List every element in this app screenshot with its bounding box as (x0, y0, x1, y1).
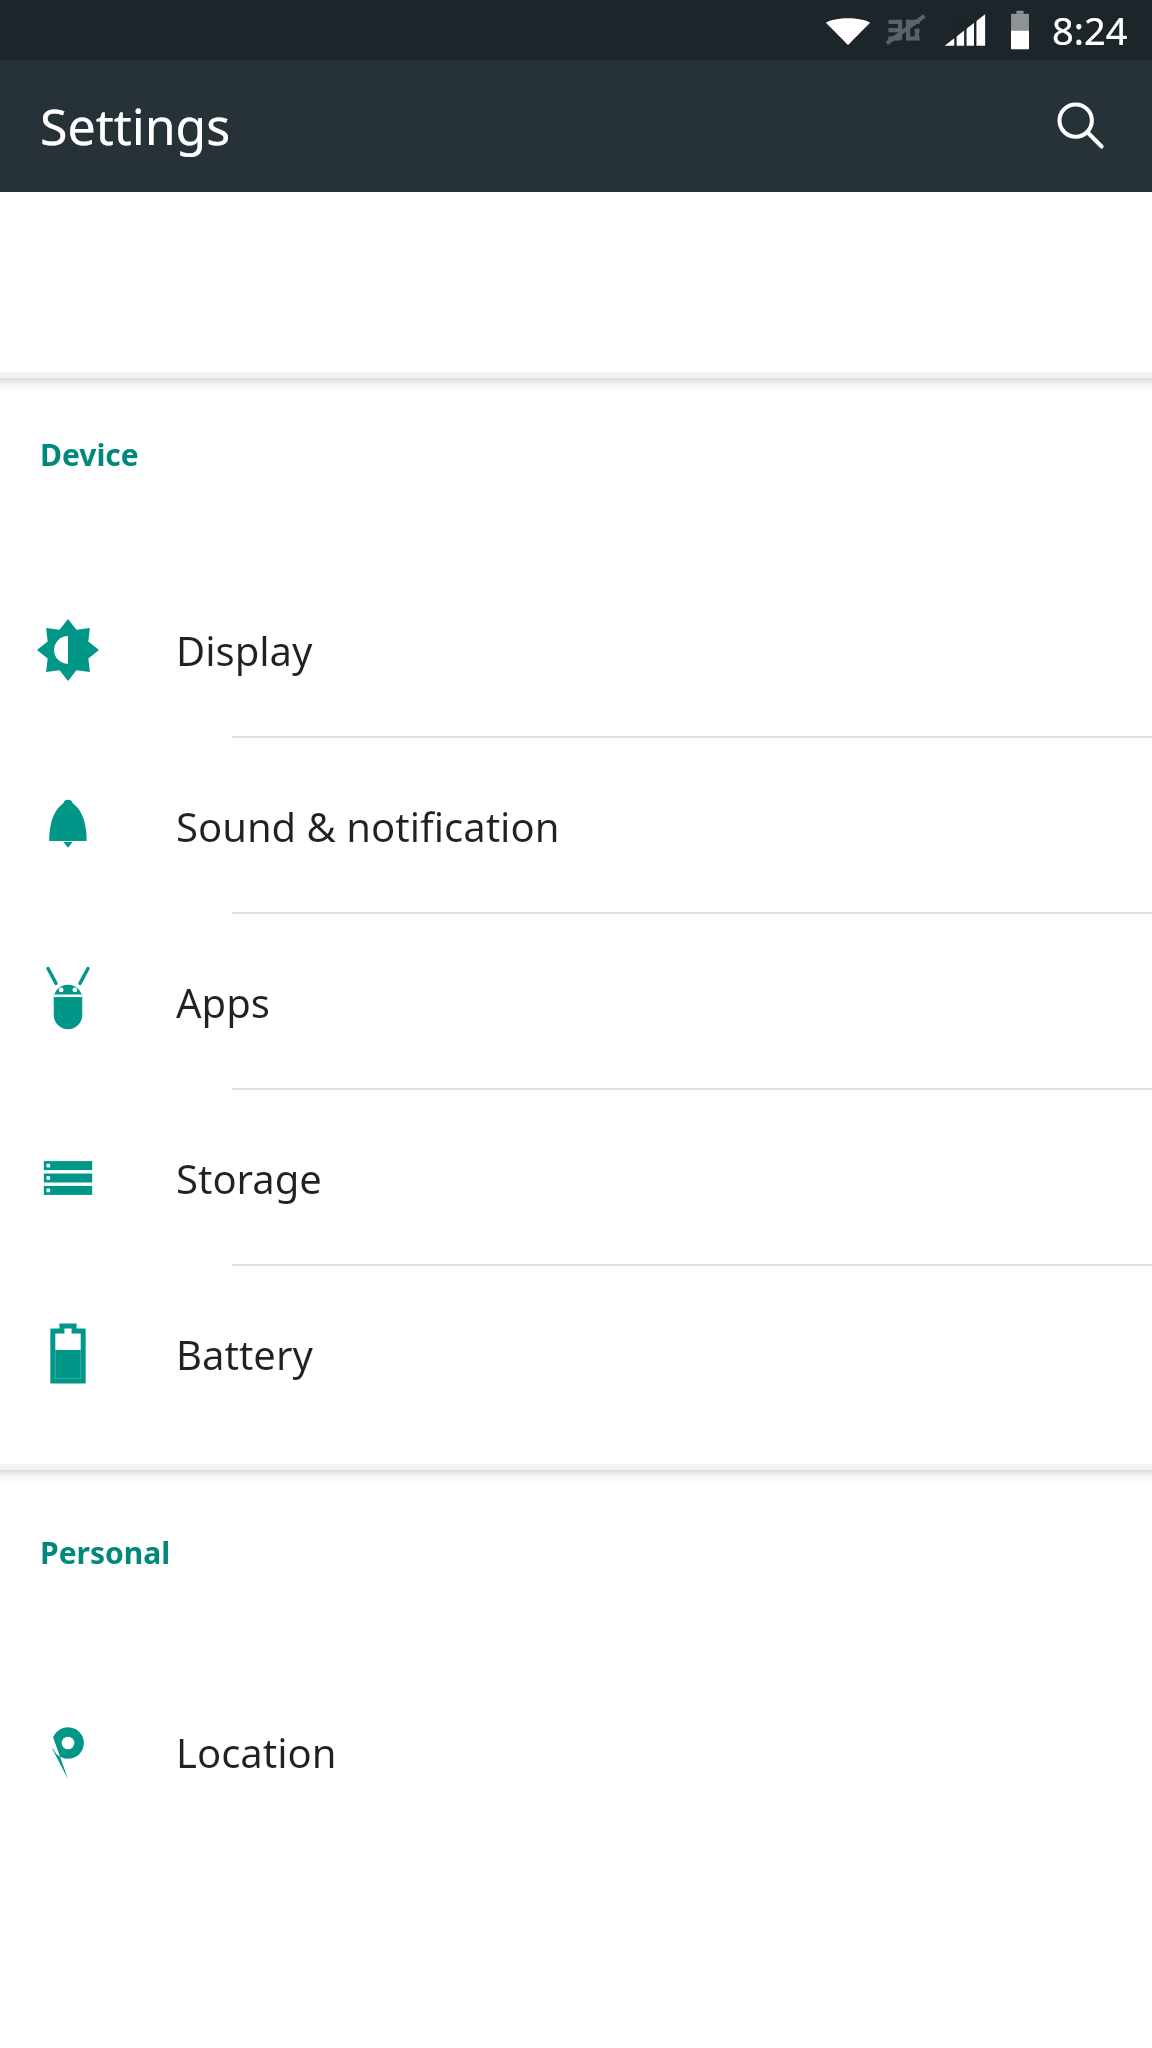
staticText: Sound & notification (176, 799, 560, 853)
button[interactable]: Location (0, 1664, 1152, 1840)
button[interactable]: Apps (0, 914, 1152, 1090)
staticText: Apps (176, 975, 270, 1029)
staticText: Settings (40, 92, 231, 160)
staticText: Location (176, 1725, 337, 1779)
button[interactable]: Sound & notification (0, 738, 1152, 914)
button[interactable]: Search (1030, 76, 1130, 176)
button[interactable]: Battery (0, 1266, 1152, 1442)
staticText: Device (40, 434, 139, 475)
staticText: Battery (176, 1327, 313, 1381)
staticText: Storage (176, 1151, 322, 1205)
staticText: Personal (40, 1532, 171, 1573)
button[interactable]: Storage (0, 1090, 1152, 1266)
button[interactable]: Display (0, 562, 1152, 738)
staticText: 8:24 (1052, 4, 1128, 56)
staticText: Display (176, 623, 313, 677)
